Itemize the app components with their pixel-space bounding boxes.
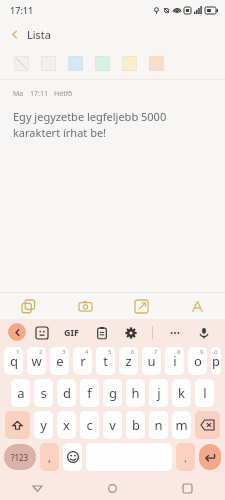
button[interactable]: Enter	[199, 444, 221, 470]
button[interactable]: u	[142, 347, 161, 375]
button[interactable]: x	[57, 411, 76, 439]
staticText: 7	[154, 348, 158, 356]
staticText: b	[132, 416, 140, 434]
staticText: d	[63, 384, 71, 402]
button[interactable]: y	[34, 411, 53, 439]
button[interactable]: Home	[75, 476, 150, 500]
button[interactable]: o	[188, 347, 207, 375]
button[interactable]: Colour 4	[122, 56, 137, 71]
button[interactable]: h	[126, 379, 145, 407]
staticText: r	[80, 352, 86, 370]
staticText: s	[40, 384, 47, 402]
other: Emoji	[67, 451, 79, 463]
button[interactable]: Recents	[150, 476, 225, 500]
staticText: 6	[131, 348, 135, 356]
staticText: 9	[200, 348, 204, 356]
staticText: Lista	[27, 27, 52, 42]
button[interactable]: s	[34, 379, 53, 407]
staticText: o	[194, 352, 202, 370]
staticText: i	[173, 352, 177, 370]
button[interactable]: v	[103, 411, 122, 439]
staticText: 5	[108, 348, 112, 356]
button[interactable]: Settings	[123, 325, 138, 340]
button[interactable]: i	[165, 347, 184, 375]
button[interactable]: .	[176, 443, 195, 471]
button[interactable]: Camera	[57, 293, 113, 319]
button[interactable]: More options	[167, 325, 182, 340]
other: Backspace	[201, 420, 214, 430]
staticText: a	[17, 384, 25, 402]
staticText: Egy jegyzetbe legfeljebb 5000 karaktert …	[13, 109, 212, 140]
button[interactable]: Back	[0, 476, 75, 500]
button[interactable]: Stickers	[34, 325, 49, 340]
staticText: 8	[177, 348, 181, 356]
button[interactable]: t	[96, 347, 115, 375]
button[interactable]: m	[172, 411, 191, 439]
button[interactable]: w	[27, 347, 46, 375]
button[interactable]: c	[80, 411, 99, 439]
button[interactable]: Colour 1	[41, 56, 56, 71]
staticText: e	[56, 352, 64, 370]
staticText: h	[131, 384, 140, 402]
button[interactable]: Voice input	[196, 325, 211, 340]
staticText: y	[40, 416, 47, 434]
staticText: u	[147, 352, 156, 370]
button[interactable]: Checklist	[0, 293, 57, 319]
staticText: l	[203, 384, 207, 402]
button[interactable]: k	[172, 379, 191, 407]
button[interactable]: Colour 0	[14, 56, 29, 71]
button[interactable]: Clipboard	[94, 325, 109, 340]
staticText: g	[109, 384, 117, 402]
staticText: p	[212, 352, 220, 370]
staticText: GIF	[64, 326, 79, 338]
button[interactable]: Shift	[5, 411, 30, 439]
staticText: j	[157, 384, 161, 402]
staticText: c	[86, 416, 93, 434]
button[interactable]: j	[149, 379, 168, 407]
button[interactable]: d	[57, 379, 76, 407]
button[interactable]: Text style	[169, 293, 225, 319]
button[interactable]: e	[50, 347, 69, 375]
button[interactable]: Colour 3	[95, 56, 110, 71]
staticText: 2	[39, 348, 43, 356]
staticText: 17:11	[10, 4, 34, 16]
button[interactable]: Colour 2	[68, 56, 83, 71]
staticText: Hétfő	[54, 89, 73, 99]
staticText: k	[178, 384, 185, 402]
staticText: m	[175, 416, 188, 434]
staticText: t	[103, 352, 108, 370]
staticText: x	[63, 416, 70, 434]
button[interactable]: r	[73, 347, 92, 375]
button[interactable]: n	[149, 411, 168, 439]
staticText: ,	[48, 450, 51, 465]
button[interactable]: Link	[113, 293, 169, 319]
button[interactable]: Emoji	[63, 443, 82, 471]
staticText: 4	[85, 348, 89, 356]
staticText: 3	[62, 348, 66, 356]
staticText: 0	[214, 348, 218, 356]
button[interactable]: p	[211, 347, 221, 375]
staticText: v	[109, 416, 116, 434]
button[interactable]: Backspace	[195, 411, 220, 439]
staticText: z	[125, 352, 132, 370]
other: Back	[9, 29, 20, 40]
button[interactable]: g	[103, 379, 122, 407]
staticText: Ma	[13, 89, 24, 99]
button[interactable]: l	[195, 379, 214, 407]
other: Shift	[12, 420, 23, 431]
button[interactable]: ,	[40, 443, 59, 471]
button[interactable]: Expand toolbar	[8, 323, 26, 341]
button[interactable]: ?123	[4, 444, 36, 470]
button[interactable]: GIF	[64, 326, 79, 338]
button[interactable]: q	[4, 347, 23, 375]
button[interactable]: a	[11, 379, 30, 407]
button[interactable]: z	[119, 347, 138, 375]
staticText: 1	[16, 348, 20, 356]
staticText: f	[87, 384, 92, 402]
staticText: 17:11	[30, 89, 48, 99]
button[interactable]: Colour 5	[149, 56, 164, 71]
button[interactable]: Back	[0, 20, 225, 48]
button[interactable]: f	[80, 379, 99, 407]
button[interactable]: b	[126, 411, 145, 439]
